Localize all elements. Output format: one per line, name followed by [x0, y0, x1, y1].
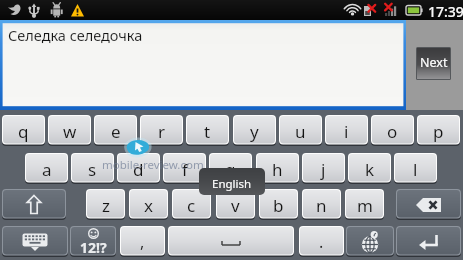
staticText: Next — [420, 54, 448, 71]
staticText: a — [42, 158, 52, 181]
button[interactable]: t — [186, 115, 229, 146]
button[interactable]: e — [94, 115, 137, 146]
button[interactable]: d — [117, 153, 160, 184]
staticText: mobile-review.com — [102, 157, 204, 173]
button[interactable]: English — [199, 168, 265, 195]
staticText: , — [140, 231, 145, 253]
staticText: x — [144, 194, 153, 217]
button[interactable]: x — [129, 189, 168, 220]
staticText: m — [357, 194, 373, 217]
button[interactable]: i — [325, 115, 368, 146]
button[interactable]: q — [2, 115, 45, 146]
staticText: z — [102, 194, 110, 217]
staticText: t — [204, 120, 211, 143]
button[interactable]: Shift — [2, 189, 66, 220]
staticText: i — [344, 120, 349, 143]
staticText: q — [18, 120, 29, 143]
staticText: h — [272, 158, 283, 181]
staticText: 17:39 — [428, 2, 463, 21]
button[interactable]: f — [163, 153, 206, 184]
button[interactable]: c — [172, 189, 211, 220]
button[interactable]: p — [417, 115, 460, 146]
button[interactable]: Hide keyboard — [2, 226, 68, 257]
button[interactable]: n — [302, 189, 341, 220]
staticText: r — [158, 120, 166, 143]
button[interactable]: a — [25, 153, 68, 184]
staticText: v — [231, 194, 240, 217]
button[interactable]: h — [256, 153, 299, 184]
button[interactable]: Space — [168, 226, 294, 257]
button[interactable]: v — [216, 189, 255, 220]
button[interactable]: Селедка селедочка — [0, 20, 406, 110]
button[interactable]: 12!? — [70, 226, 116, 257]
button[interactable]: s — [71, 153, 114, 184]
staticText: b — [273, 194, 284, 217]
button[interactable]: l — [394, 153, 437, 184]
button[interactable]: g — [209, 153, 252, 184]
staticText: n — [316, 194, 327, 217]
staticText: w — [63, 120, 77, 143]
button[interactable]: Enter — [396, 226, 461, 257]
button[interactable]: Next — [417, 48, 450, 79]
staticText: d — [133, 158, 144, 181]
staticText: English — [212, 176, 252, 192]
staticText: l — [413, 158, 418, 181]
staticText: e — [111, 120, 121, 143]
button[interactable]: y — [233, 115, 276, 146]
staticText: . — [319, 231, 324, 253]
button[interactable]: z — [86, 189, 125, 220]
button[interactable]: w — [48, 115, 91, 146]
button[interactable]: o — [371, 115, 414, 146]
staticText: y — [250, 120, 259, 143]
button[interactable]: j — [302, 153, 345, 184]
button[interactable]: . — [299, 226, 344, 257]
staticText: k — [365, 158, 375, 181]
staticText: f — [182, 158, 188, 181]
staticText: 12!? — [80, 238, 107, 255]
staticText: Селедка селедочка — [8, 25, 143, 45]
staticText: j — [321, 158, 326, 181]
button[interactable]: , — [120, 226, 165, 257]
button[interactable]: r — [140, 115, 183, 146]
staticText: g — [225, 158, 236, 181]
staticText: p — [433, 120, 444, 143]
button[interactable]: m — [345, 189, 384, 220]
staticText: s — [88, 158, 97, 181]
button[interactable]: Change language — [346, 226, 394, 257]
button[interactable]: k — [348, 153, 391, 184]
staticText: u — [295, 120, 306, 143]
button[interactable]: u — [279, 115, 322, 146]
staticText: o — [387, 120, 398, 143]
button[interactable]: b — [259, 189, 298, 220]
button[interactable]: Backspace — [396, 189, 461, 220]
staticText: c — [187, 194, 196, 217]
